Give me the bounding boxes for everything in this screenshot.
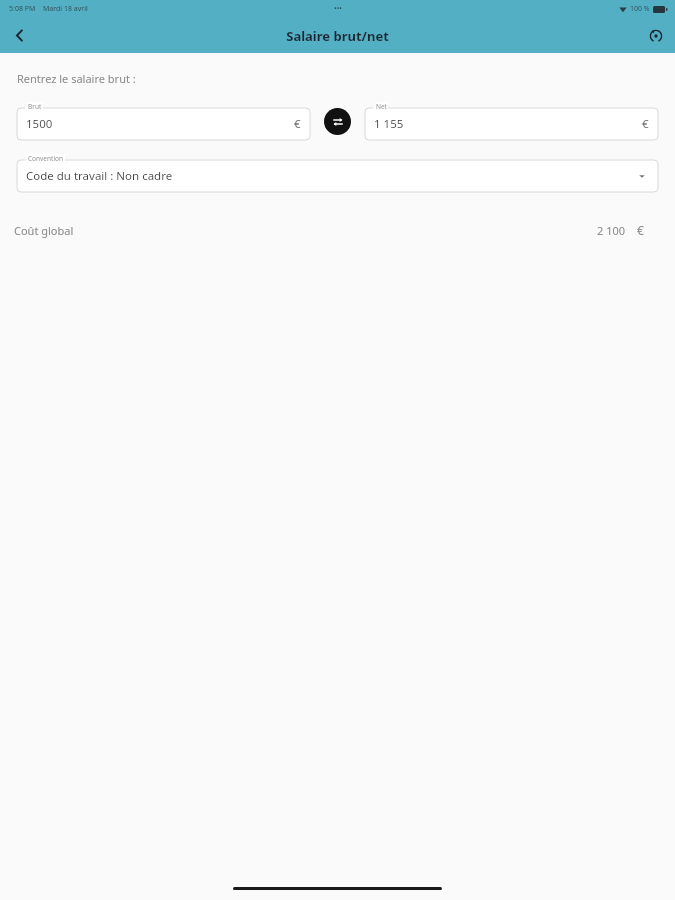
staticText: Mardi 18 avril — [43, 4, 88, 14]
staticText: Salaire brut/net — [286, 27, 389, 45]
staticText: ••• — [334, 4, 342, 14]
staticText: 100 % — [630, 4, 650, 14]
staticText: Convention — [28, 154, 64, 163]
staticText: Net — [376, 102, 387, 111]
staticText: 1 155 — [374, 116, 404, 132]
staticText: € — [642, 116, 649, 132]
button[interactable]: Historique — [637, 18, 675, 53]
staticText: Rentrez le salaire brut : — [17, 71, 136, 86]
staticText: € — [637, 222, 644, 238]
button[interactable]: Inverser brut et net — [324, 108, 351, 135]
button[interactable] — [17, 160, 658, 192]
staticText: Brut — [28, 102, 42, 111]
button[interactable] — [17, 108, 310, 140]
button[interactable]: Retour — [0, 18, 38, 53]
staticText: 1500 — [26, 116, 53, 132]
button[interactable] — [365, 108, 658, 140]
staticText: 2 100 — [597, 223, 626, 238]
staticText: € — [294, 116, 301, 132]
staticText: Coût global — [14, 223, 74, 238]
staticText: 5:08 PM — [9, 4, 36, 14]
staticText: Code du travail : Non cadre — [26, 168, 173, 184]
